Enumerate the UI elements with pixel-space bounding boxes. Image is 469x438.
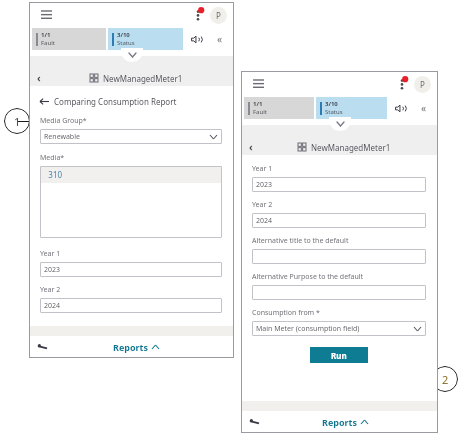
staticText: ‹ [249,140,253,154]
staticText: « [217,32,223,46]
staticText: Status [117,39,135,47]
staticText: NewManagedMeter1 [311,142,391,153]
staticText: Consumption from * [252,308,320,318]
button[interactable]: P [210,7,227,24]
button[interactable] [252,249,426,264]
staticText: Fault [253,108,267,116]
button[interactable]: Run [310,347,368,363]
button[interactable] [252,285,426,300]
staticText: Media* [40,153,65,163]
button[interactable]: 2023 [40,262,222,277]
staticText: Renewable [44,132,80,142]
staticText: Year 1 [40,249,61,259]
staticText: Media Group* [40,116,87,126]
staticText: NewManagedMeter1 [103,73,183,84]
button[interactable]: Main Meter (consumption field) [252,321,426,336]
button[interactable]: P [414,76,431,93]
button[interactable]: More options [190,5,206,25]
button[interactable]: 2023 [252,177,426,192]
button[interactable]: Collapse [413,97,435,119]
staticText: Main Meter (consumption field) [256,324,360,334]
button[interactable]: Collapse [209,28,231,50]
button[interactable]: Sound [387,97,413,119]
button[interactable]: Reports [318,414,372,430]
button[interactable]: Reports [109,339,163,355]
staticText: 310 [40,169,63,180]
button[interactable] [329,117,351,131]
button[interactable]: Back [29,70,49,86]
button[interactable]: Menu [249,75,267,93]
button[interactable]: Back [241,139,261,155]
staticText: Alternative title to the default [252,236,349,246]
staticText: Alternative Purpose to the default [252,272,364,282]
staticText: 2 [442,372,449,387]
staticText: 2023 [256,180,273,190]
staticText: 1 [14,114,21,129]
button[interactable]: 2024 [40,298,222,313]
staticText: Year 1 [252,164,273,174]
button[interactable] [121,48,143,62]
staticText: 1/1 [41,31,51,39]
staticText: « [421,101,427,115]
staticText: Reports [113,341,149,353]
staticText: Year 2 [40,285,61,295]
staticText: P [216,10,221,21]
staticText: Run [331,350,347,361]
button[interactable]: Comparing Consumption Report [40,96,177,107]
button[interactable]: 1/1 [32,28,106,50]
staticText: Comparing Consumption Report [54,96,177,107]
staticText: 3/10 [325,100,338,108]
button[interactable]: 3/10 [316,97,387,119]
button[interactable]: More options [394,74,410,94]
staticText: Year 2 [252,200,273,210]
button[interactable]: 310 [40,166,222,238]
staticText: 2023 [44,265,61,275]
staticText: Reports [322,416,358,428]
staticText: 3/10 [117,31,130,39]
button[interactable]: 1/1 [244,97,314,119]
staticText: 2024 [44,301,61,311]
staticText: P [420,79,425,90]
staticText: ‹ [37,71,41,85]
staticText: Status [325,108,343,116]
staticText: Fault [41,39,55,47]
button[interactable]: Sound [183,28,209,50]
button[interactable]: Tools [36,341,48,353]
staticText: 2024 [256,216,273,226]
button[interactable]: 3/10 [108,28,183,50]
button[interactable]: Renewable [40,129,222,144]
button[interactable]: Menu [37,6,55,24]
staticText: 1/1 [253,100,263,108]
button[interactable]: 2024 [252,213,426,228]
button[interactable]: Tools [248,416,260,428]
